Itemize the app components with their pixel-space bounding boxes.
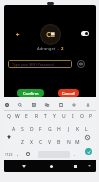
button[interactable]: Home [47, 162, 55, 170]
staticText: R [35, 113, 39, 120]
button[interactable]: Z [18, 137, 27, 148]
staticText: . [74, 151, 76, 158]
button[interactable]: J [64, 124, 73, 135]
staticText: D [30, 126, 34, 133]
staticText: , [17, 151, 19, 158]
staticText: U [62, 113, 66, 120]
staticText: T [44, 113, 47, 120]
button[interactable]: Q [4, 111, 13, 122]
staticText: Y [53, 113, 56, 120]
button[interactable]: Toolbar item 3 [30, 101, 38, 109]
button[interactable]: K [73, 124, 82, 135]
button[interactable]: Shift [5, 133, 13, 141]
staticText: Confirm [23, 91, 39, 96]
staticText: I [72, 113, 74, 120]
button[interactable]: F [36, 124, 45, 135]
button[interactable]: Toggle [81, 31, 89, 36]
staticText: Q [7, 113, 11, 120]
button[interactable]: Recent apps [71, 162, 79, 170]
staticText: S [21, 126, 24, 133]
button[interactable]: W [13, 111, 22, 122]
button[interactable]: Toolbar item 2 [16, 101, 24, 109]
button[interactable]: ?123 [5, 151, 13, 158]
staticText: ?123 [5, 152, 13, 157]
staticText: Z [21, 139, 24, 146]
button[interactable]: S [18, 124, 27, 135]
button[interactable]: N [64, 137, 73, 148]
staticText: M [75, 139, 80, 146]
staticText: O [80, 113, 84, 120]
button[interactable]: Type your WiFi Password [8, 60, 72, 68]
button[interactable]: Backspace [83, 133, 91, 141]
button[interactable]: Toolbar item 5 [57, 101, 65, 109]
button[interactable]: Enter [85, 148, 92, 155]
staticText: L [85, 126, 88, 133]
button[interactable]: G [45, 124, 54, 135]
button[interactable]: . [71, 150, 79, 158]
button[interactable]: R [32, 111, 41, 122]
button[interactable]: Close keyboard [20, 162, 28, 170]
button[interactable]: Cancel [58, 89, 79, 97]
staticText: X [30, 139, 33, 146]
button[interactable]: U [59, 111, 68, 122]
staticText: F [39, 126, 42, 133]
staticText: V [48, 139, 52, 146]
staticText: W [15, 113, 20, 120]
button[interactable]: A [9, 124, 18, 135]
staticText: Adranget - [37, 46, 61, 52]
staticText: N [67, 139, 71, 146]
staticText: 2 [61, 46, 64, 52]
staticText: E [25, 113, 28, 120]
button[interactable]: M [73, 137, 82, 148]
button[interactable]: Y [50, 111, 59, 122]
button[interactable]: Toolbar item 1 [4, 101, 11, 109]
button[interactable]: Confirm [17, 89, 44, 97]
button[interactable]: Toolbar item 6 [70, 101, 78, 109]
staticText: H [57, 126, 61, 133]
button[interactable]: V [45, 137, 54, 148]
button[interactable]: Toolbar item 7 [84, 101, 92, 109]
button[interactable]: Emoji [24, 150, 32, 158]
staticText: J [68, 126, 70, 133]
button[interactable]: O [77, 111, 86, 122]
button[interactable]: I [68, 111, 77, 122]
button[interactable]: B [54, 137, 63, 148]
staticText: Type your WiFi Password [12, 62, 54, 67]
button[interactable]: D [27, 124, 36, 135]
button[interactable]: L [82, 124, 91, 135]
staticText: Cancel [62, 91, 75, 96]
button[interactable]: Toolbar item 4 [43, 101, 51, 109]
button[interactable]: App logo [40, 24, 61, 45]
staticText: A [12, 126, 16, 133]
button[interactable]: P [86, 111, 95, 122]
button[interactable]: T [41, 111, 50, 122]
staticText: G [48, 126, 52, 133]
staticText: K [76, 126, 80, 133]
button[interactable]: C [36, 137, 45, 148]
button[interactable]: Switch keyboard [85, 162, 93, 170]
button[interactable]: Back [12, 29, 22, 39]
button[interactable]: E [22, 111, 31, 122]
staticText: B [57, 139, 61, 146]
button[interactable]: H [54, 124, 63, 135]
button[interactable]: X [27, 137, 36, 148]
staticText: C [39, 139, 43, 146]
button[interactable]: , [14, 150, 22, 158]
staticText: P [89, 113, 93, 120]
button[interactable]: Show password [76, 59, 86, 69]
